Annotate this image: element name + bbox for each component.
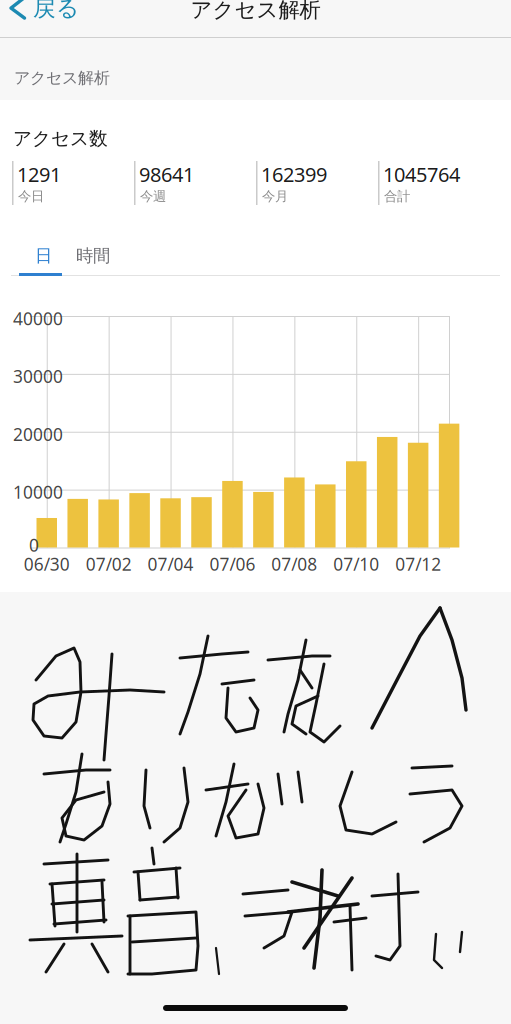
staticText: 10000 [13, 481, 63, 504]
button[interactable]: 戻る [0, 0, 79, 22]
button[interactable]: 時間 [0, 0, 112, 274]
staticText: アクセス数 [13, 127, 108, 150]
staticText: アクセス解析 [190, 0, 320, 23]
staticText: 07/06 [209, 552, 255, 575]
staticText: 今週 [140, 188, 166, 204]
staticText: 07/12 [395, 552, 441, 575]
staticText: 98641 [139, 161, 194, 188]
staticText: 07/10 [333, 552, 379, 575]
staticText: 戻る [33, 0, 79, 22]
staticText: 0 [29, 533, 39, 556]
staticText: 1291 [17, 161, 61, 188]
staticText: 20000 [13, 423, 63, 446]
staticText: 日 [35, 245, 52, 266]
staticText: 162399 [261, 161, 327, 188]
staticText: 今月 [262, 188, 288, 204]
staticText: 07/04 [148, 552, 194, 575]
staticText: 1045764 [383, 161, 460, 188]
staticText: 30000 [13, 365, 63, 388]
staticText: 07/08 [271, 552, 317, 575]
staticText: 07/02 [86, 552, 132, 575]
staticText: アクセス解析 [14, 68, 110, 88]
staticText: 06/30 [24, 552, 70, 575]
staticText: 合計 [384, 188, 410, 204]
staticText: 40000 [13, 307, 63, 330]
staticText: 今日 [18, 188, 44, 204]
button[interactable]: 日 [0, 0, 62, 276]
staticText: 時間 [76, 245, 110, 266]
